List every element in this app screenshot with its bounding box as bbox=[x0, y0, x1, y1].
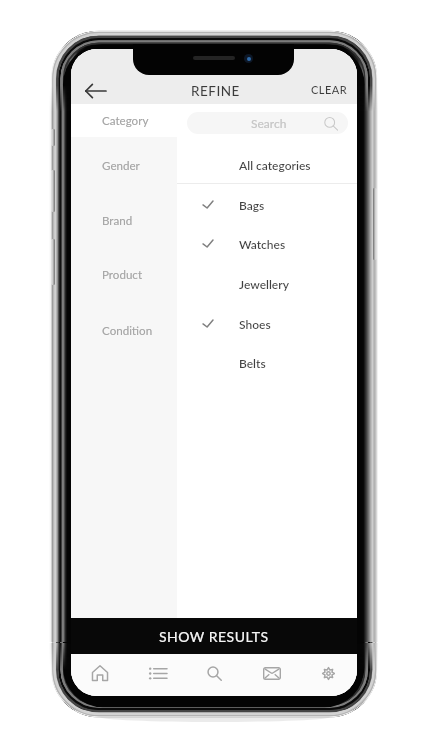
button[interactable]: Lists bbox=[129, 654, 186, 696]
button[interactable]: Belts bbox=[177, 343, 357, 382]
button[interactable]: CLEAR bbox=[306, 77, 352, 102]
button[interactable]: Bags bbox=[177, 185, 357, 224]
button[interactable]: Mail bbox=[243, 654, 300, 696]
button[interactable]: Home bbox=[71, 654, 129, 696]
staticText: CLEAR bbox=[311, 83, 348, 96]
button[interactable]: Back bbox=[80, 76, 110, 106]
staticText: Jewellery bbox=[239, 277, 289, 291]
button[interactable]: Settings bbox=[300, 654, 357, 696]
button[interactable]: Category bbox=[71, 104, 177, 137]
staticText: Bags bbox=[239, 198, 265, 212]
staticText: All categories bbox=[239, 158, 311, 172]
button[interactable]: Gender bbox=[71, 137, 177, 195]
staticText: REFINE bbox=[191, 83, 240, 99]
staticText: Watches bbox=[239, 237, 286, 251]
button[interactable]: Shoes bbox=[177, 304, 357, 343]
staticText: Gender bbox=[102, 159, 140, 173]
button[interactable]: Product bbox=[71, 247, 177, 302]
button[interactable]: Brand bbox=[71, 195, 177, 247]
staticText: Category bbox=[102, 114, 149, 128]
button[interactable]: All categories bbox=[177, 145, 357, 184]
button[interactable]: Condition bbox=[71, 302, 177, 359]
button[interactable]: Watches bbox=[177, 224, 357, 263]
button[interactable]: SHOW RESULTS bbox=[71, 618, 357, 654]
staticText: Belts bbox=[239, 356, 266, 370]
button[interactable]: Search bbox=[186, 654, 243, 696]
staticText: SHOW RESULTS bbox=[159, 628, 269, 645]
button[interactable]: Jewellery bbox=[177, 264, 357, 303]
staticText: Search bbox=[251, 116, 287, 130]
staticText: Product bbox=[102, 268, 143, 282]
staticText: Brand bbox=[102, 214, 133, 228]
staticText: Shoes bbox=[239, 317, 271, 331]
staticText: Condition bbox=[102, 324, 153, 338]
button[interactable]: Search bbox=[187, 112, 348, 134]
